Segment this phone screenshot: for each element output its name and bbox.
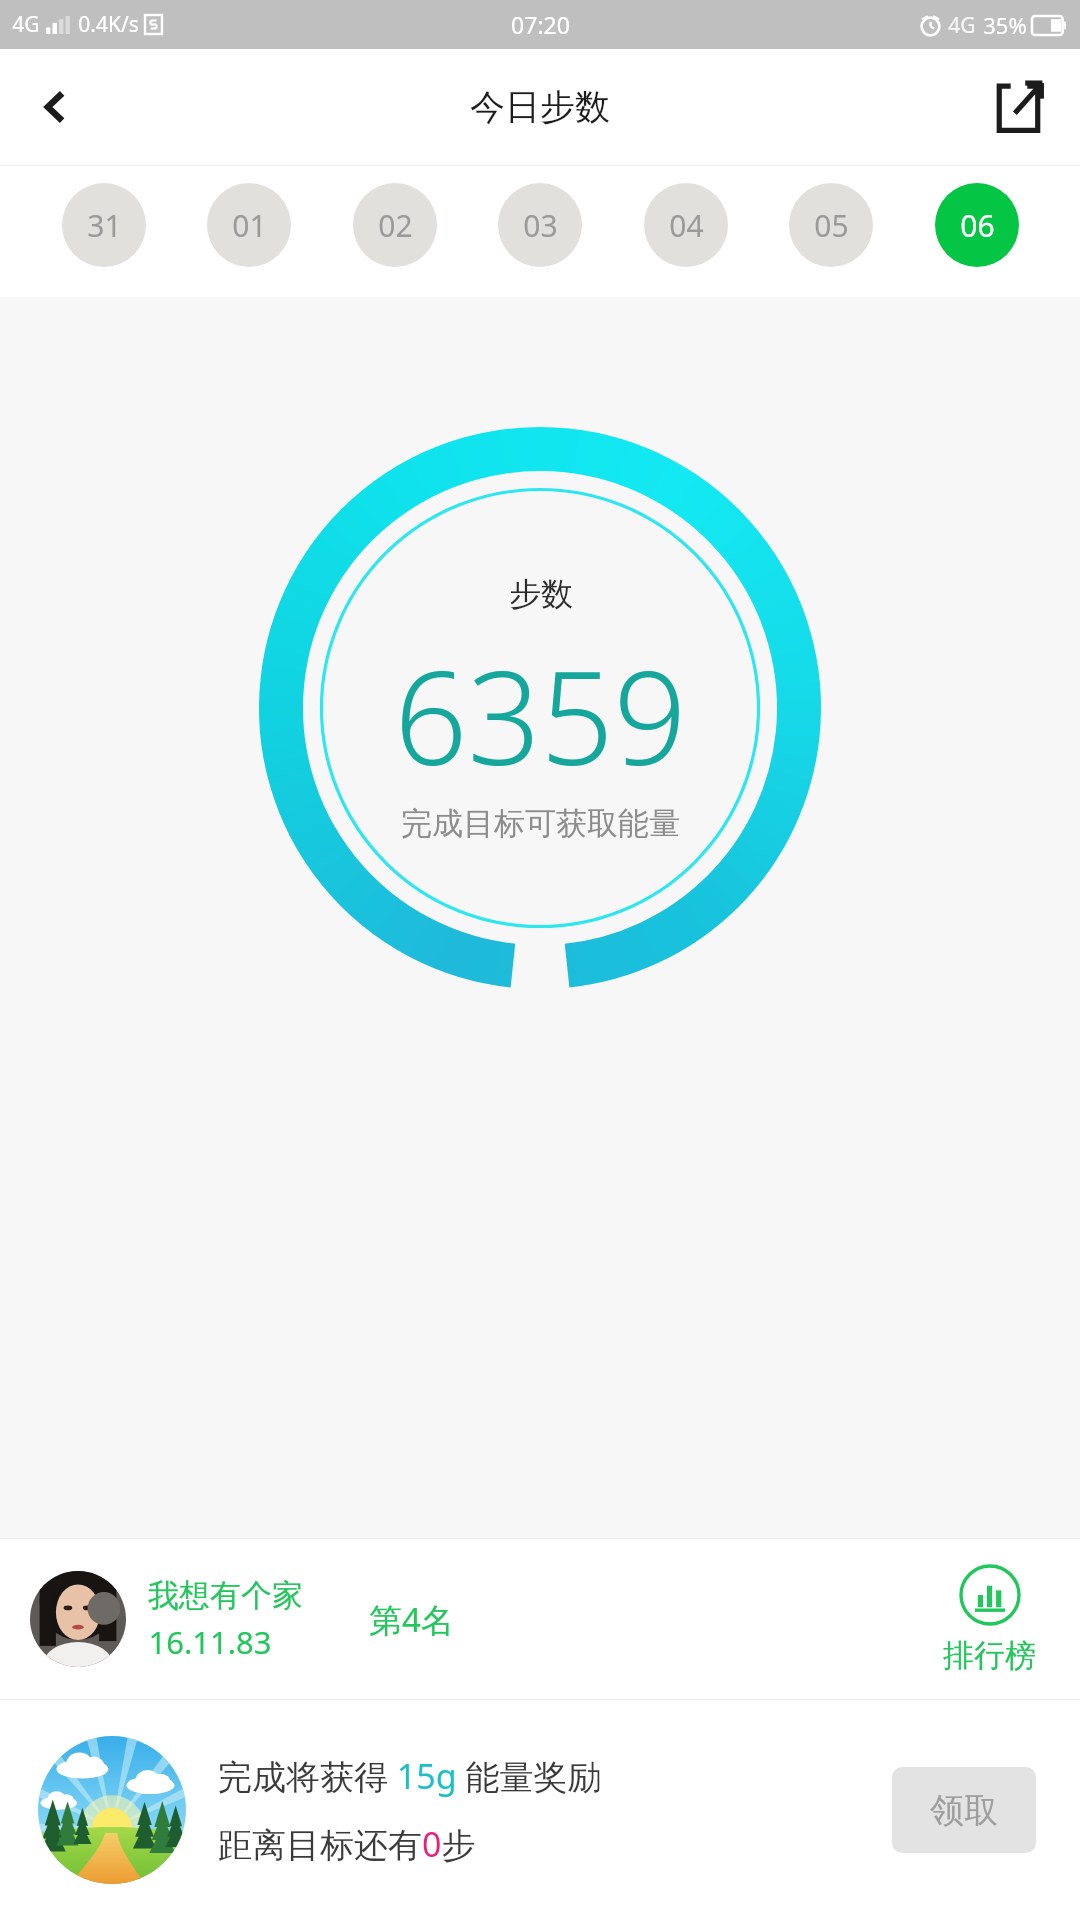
staticText: 04 [669,205,704,246]
staticText: 第4名 [369,1597,454,1642]
staticText: 07:20 [511,9,570,40]
button[interactable]: 02 [353,183,437,267]
button[interactable]: 我想有个家 [0,1539,1080,1699]
staticText: 领取 [930,1789,998,1832]
staticText: 完成将获得 15g 能量奖励 [218,1753,602,1799]
staticText: 完成目标可获取能量 [401,804,680,843]
button[interactable]: 05 [789,183,873,267]
button[interactable]: 排行榜 [943,1564,1036,1675]
button[interactable]: 06 [935,183,1019,267]
button[interactable]: 领取 [892,1767,1036,1853]
button[interactable]: Share [980,68,1058,146]
staticText: 05 [814,205,849,246]
button[interactable]: 01 [207,183,291,267]
staticText: 今日步数 [470,85,610,129]
staticText: 排行榜 [943,1636,1036,1675]
staticText: 4G [948,11,976,40]
button[interactable]: 31 [62,183,146,267]
staticText: 我想有个家 [148,1576,303,1615]
staticText: 0.4K/s [78,10,139,39]
staticText: 02 [378,205,413,246]
button[interactable]: 04 [644,183,728,267]
button[interactable]: Back [20,71,92,143]
staticText: 35% [983,10,1027,40]
staticText: 步数 [509,574,573,614]
staticText: 距离目标还有0步 [218,1821,476,1867]
staticText: 06 [960,205,995,246]
staticText: 4G [12,10,40,39]
staticText: 03 [523,205,558,246]
staticText: 6359 [394,628,687,802]
staticText: 16.11.83 [148,1621,272,1663]
staticText: 31 [87,205,122,246]
staticText: 01 [232,205,267,246]
button[interactable]: 03 [498,183,582,267]
